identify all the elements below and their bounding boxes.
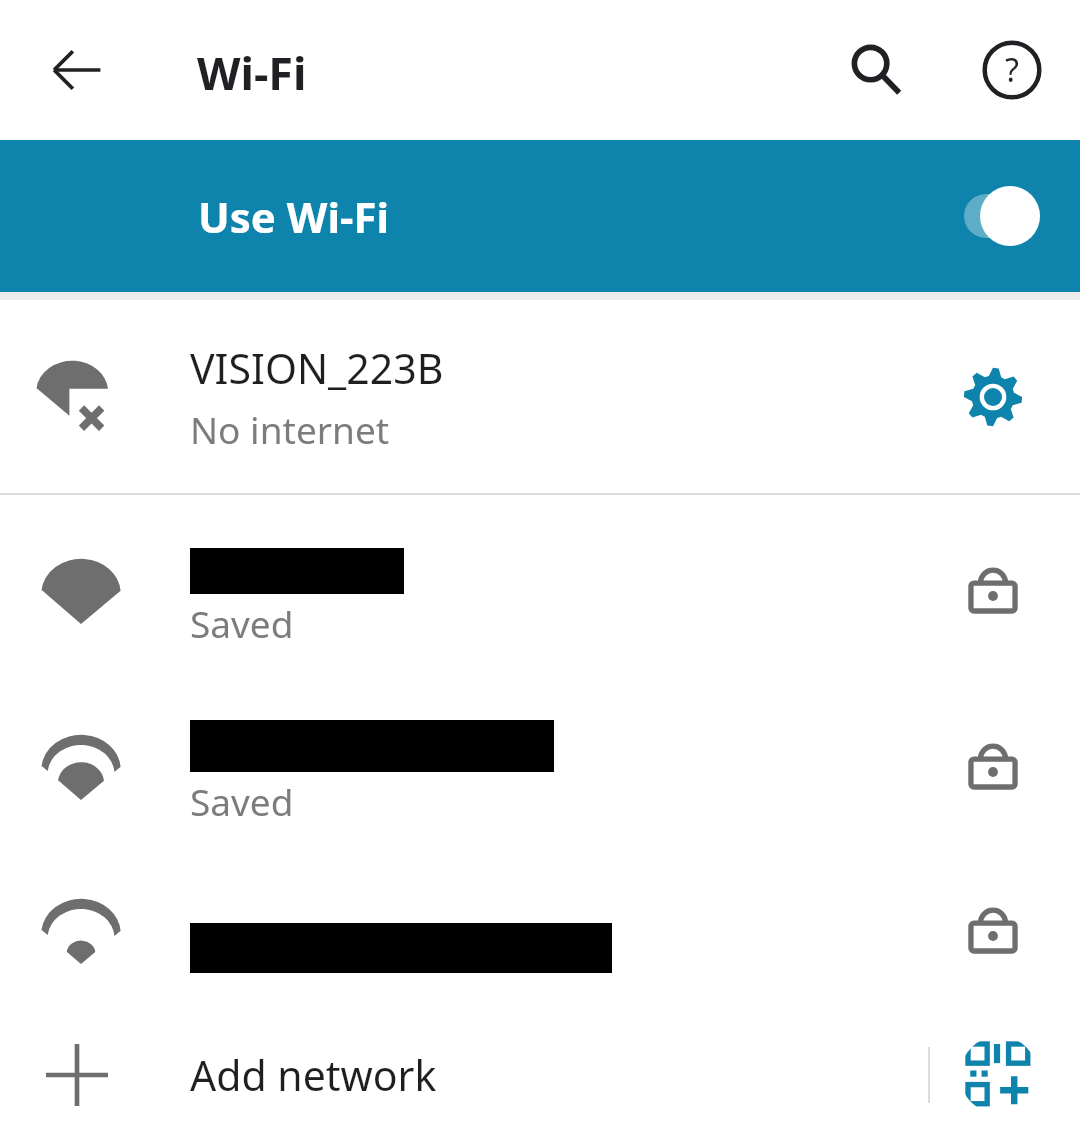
button[interactable]: Network settings [950,354,1036,440]
button[interactable]: Help [966,24,1058,116]
staticText: VISION_223B [190,340,444,396]
button[interactable]: Secured network [0,847,1080,1011]
staticText: Saved [190,776,294,826]
staticText: Saved [190,598,294,648]
staticText: ? [1005,48,1019,92]
button[interactable]: Saved [0,495,1080,683]
staticText: Wi-Fi [197,42,307,103]
button[interactable]: VISION_223B [0,300,1080,493]
button[interactable]: Use Wi-Fi [0,140,1080,292]
button[interactable]: Scan QR code [960,1036,1038,1114]
button[interactable]: Back [34,27,120,113]
button[interactable]: Add network [0,1011,1080,1139]
other: Secured network [950,546,1036,632]
button[interactable]: Search [830,24,922,116]
button[interactable]: Saved [0,683,1080,847]
other: Secured network [950,886,1036,972]
staticText: Use Wi-Fi [198,188,390,245]
staticText: Add network [190,1047,928,1103]
staticText: No internet [190,404,390,454]
other: Secured network [950,722,1036,808]
